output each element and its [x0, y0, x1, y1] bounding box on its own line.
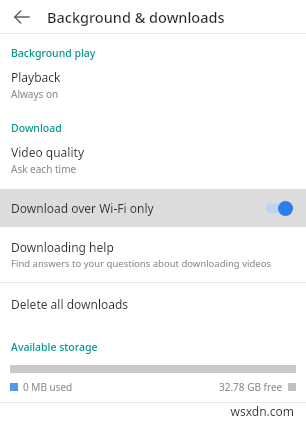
staticText: 32.78 GB free [219, 380, 283, 394]
staticText: Download over Wi-Fi only [11, 200, 154, 216]
button[interactable]: Downloading help [0, 227, 306, 270]
staticText: Download [11, 121, 62, 135]
staticText: Video quality [11, 144, 84, 160]
button[interactable]: Back [8, 3, 36, 31]
button[interactable]: Download over Wi-Fi only [0, 189, 306, 227]
staticText: Delete all downloads [11, 296, 129, 312]
staticText: Available storage [11, 340, 98, 354]
staticText: Find answers to your questions about dow… [11, 257, 271, 270]
staticText: Background & downloads [47, 7, 225, 27]
staticText: Background play [11, 46, 96, 60]
staticText: Playback [11, 69, 61, 85]
staticText: Always on [11, 87, 59, 101]
button[interactable]: Delete all downloads [0, 283, 306, 325]
button[interactable]: Video quality [0, 135, 306, 176]
button[interactable]: Playback [0, 60, 306, 101]
staticText: Ask each time [11, 162, 77, 176]
staticText: 0 MB used [23, 380, 73, 394]
staticText: Downloading help [11, 239, 114, 255]
staticText: wsxdn.com [0, 403, 294, 419]
